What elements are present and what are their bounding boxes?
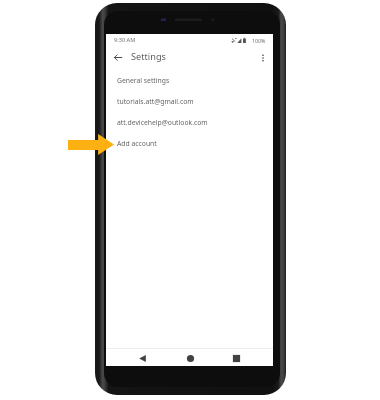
staticText: General settings <box>117 76 170 85</box>
button[interactable]: Home <box>178 350 202 366</box>
staticText: tutorials.att@gmail.com <box>117 97 194 106</box>
button[interactable]: Add account <box>106 133 273 154</box>
staticText: att.devicehelp@outlook.com <box>117 118 208 127</box>
button[interactable]: tutorials.att@gmail.com <box>106 91 273 112</box>
button[interactable]: Back <box>130 350 154 366</box>
button[interactable]: More options <box>257 52 269 64</box>
staticText: Add account <box>117 139 157 148</box>
staticText: 9:30 AM <box>114 36 136 44</box>
staticText: 100% <box>252 37 266 44</box>
button[interactable]: att.devicehelp@outlook.com <box>106 112 273 133</box>
staticText: Settings <box>131 50 166 63</box>
button[interactable]: General settings <box>106 70 273 91</box>
button[interactable]: Recent apps <box>224 350 248 366</box>
button[interactable]: Back <box>112 51 125 64</box>
